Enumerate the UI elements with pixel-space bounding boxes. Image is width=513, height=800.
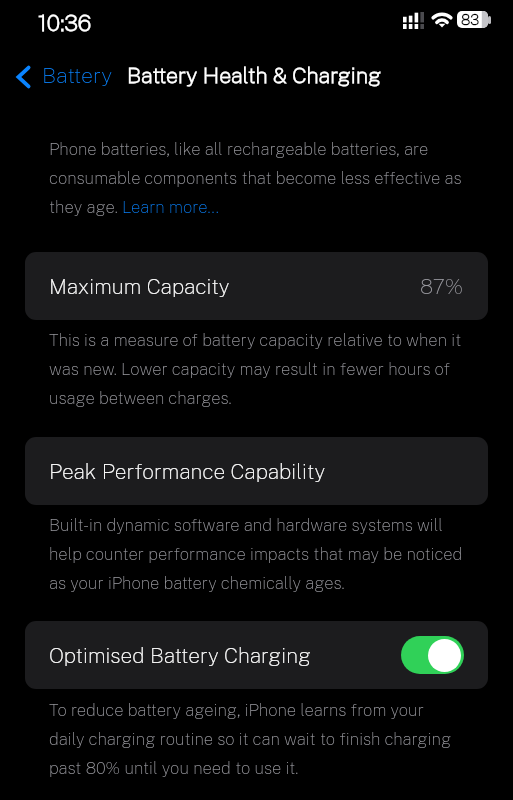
staticText: Peak Performance Capability bbox=[49, 459, 326, 484]
staticText: 87% bbox=[420, 274, 464, 299]
staticText: Built-in dynamic software and hardware s… bbox=[49, 508, 463, 595]
button[interactable]: Maximum Capacity bbox=[25, 252, 488, 320]
staticText: Phone batteries, like all rechargeable b… bbox=[49, 132, 463, 219]
staticText: Battery bbox=[42, 63, 113, 88]
button[interactable]: Optimised Battery Charging bbox=[25, 621, 488, 689]
staticText: 10:36 bbox=[38, 9, 92, 36]
staticText: Optimised Battery Charging bbox=[49, 643, 311, 668]
other: Back bbox=[16, 66, 30, 88]
staticText: Maximum Capacity bbox=[49, 274, 230, 299]
other: Wi-Fi bbox=[431, 12, 453, 27]
other: Cellular signal bbox=[403, 12, 424, 29]
staticText: This is a measure of battery capacity re… bbox=[49, 323, 463, 410]
button[interactable]: Peak Performance Capability bbox=[25, 437, 488, 505]
button[interactable]: Back bbox=[0, 46, 121, 90]
staticText: 83 bbox=[461, 11, 480, 28]
button[interactable]: Optimised Battery Charging bbox=[401, 636, 464, 674]
staticText: To reduce battery ageing, iPhone learns … bbox=[49, 693, 463, 780]
other: Battery 83 percent bbox=[457, 11, 491, 28]
staticText: Battery Health & Charging bbox=[127, 63, 382, 88]
